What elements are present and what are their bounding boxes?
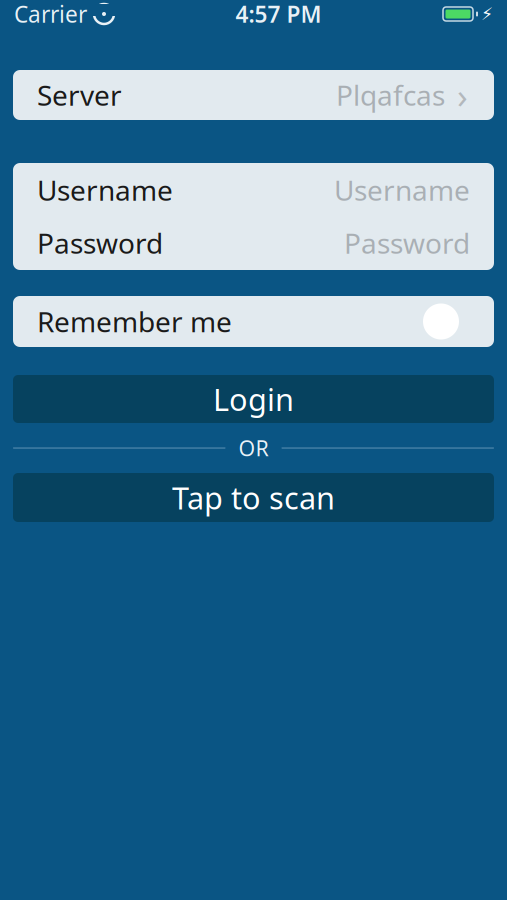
staticText: Remember me [37, 303, 232, 340]
staticText: Password [344, 224, 470, 262]
button[interactable]: Username [13, 163, 494, 216]
button[interactable]: Server [0, 70, 507, 120]
button[interactable]: Login [0, 375, 507, 423]
staticText: Tap to scan [172, 477, 335, 518]
staticText: Password [37, 224, 163, 262]
staticText: Login [213, 379, 294, 419]
button[interactable]: Password [13, 216, 494, 269]
staticText: Server [37, 76, 122, 114]
staticText: Username [334, 171, 470, 209]
staticText: Carrier [14, 0, 87, 29]
staticText: OR [238, 434, 268, 462]
staticText: › [457, 72, 468, 118]
button[interactable]: Tap to scan [0, 473, 507, 522]
button[interactable]: Remember me [0, 296, 507, 347]
staticText: Plqafcas [336, 76, 445, 114]
staticText: 4:57 PM [235, 0, 321, 29]
staticText: Username [37, 171, 173, 209]
staticText: ⚡︎ [481, 4, 493, 24]
